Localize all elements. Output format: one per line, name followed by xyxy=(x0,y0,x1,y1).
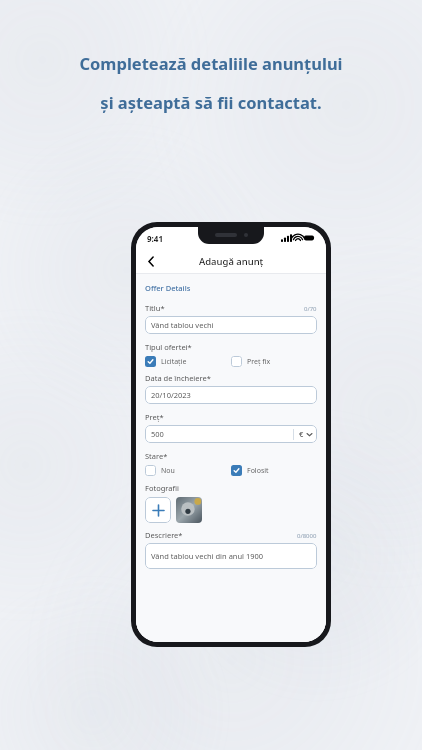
button[interactable]: Back xyxy=(142,252,160,270)
staticText: Vând tablou vechi din anul 1900 xyxy=(151,551,264,561)
button[interactable]: Add photo xyxy=(145,497,171,523)
staticText: Vând tablou vechi xyxy=(151,320,214,330)
staticText: Folosit xyxy=(247,466,269,476)
staticText: Licitație xyxy=(161,357,187,367)
staticText: Data de încheiere* xyxy=(145,373,211,383)
button[interactable]: Licitație xyxy=(145,356,231,367)
staticText: 500 xyxy=(151,429,293,439)
staticText: € xyxy=(299,429,304,439)
staticText: Stare* xyxy=(145,451,168,461)
button[interactable]: Photo thumbnail xyxy=(176,497,202,523)
staticText: 20/10/2023 xyxy=(151,390,191,400)
staticText: 0/70 xyxy=(304,305,317,313)
staticText: Preț* xyxy=(145,412,164,422)
staticText: Completează detaliile anunțului xyxy=(79,52,343,74)
button[interactable]: Vând tablou vechi xyxy=(145,316,317,334)
staticText: 9:41 xyxy=(147,233,163,244)
staticText: Adaugă anunț xyxy=(199,255,264,268)
button[interactable]: 500 xyxy=(145,425,317,443)
staticText: Fotografii xyxy=(145,483,179,493)
staticText: Nou xyxy=(161,466,175,476)
staticText: 0/8000 xyxy=(297,532,317,540)
staticText: Titlu* xyxy=(145,303,165,313)
staticText: Descriere* xyxy=(145,530,183,540)
button[interactable]: Preț fix xyxy=(231,356,317,367)
staticText: Preț fix xyxy=(247,357,271,367)
button[interactable]: Vând tablou vechi din anul 1900 xyxy=(145,543,317,569)
button[interactable]: Folosit xyxy=(231,465,317,476)
button[interactable]: Nou xyxy=(145,465,231,476)
staticText: Offer Details xyxy=(145,283,191,293)
staticText: Tipul ofertei* xyxy=(145,342,192,352)
staticText: și așteaptă să fii contactat. xyxy=(100,91,322,113)
button[interactable]: 20/10/2023 xyxy=(145,386,317,404)
